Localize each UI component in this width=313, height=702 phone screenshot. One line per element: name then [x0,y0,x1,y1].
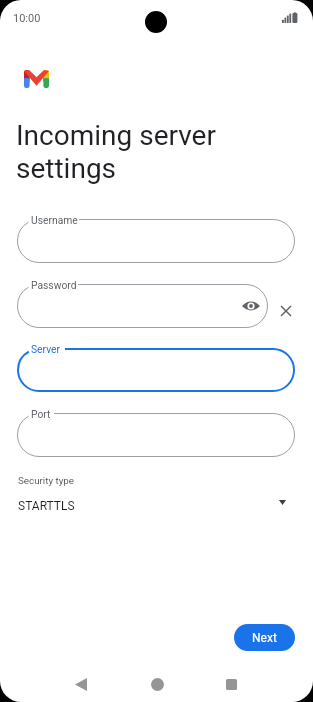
button[interactable]: Clear [274,299,298,323]
staticText: Server [31,343,61,355]
button[interactable]: Recents [211,664,251,702]
staticText: Port [31,408,51,420]
button[interactable]: Password [17,284,268,328]
button[interactable]: Security type [0,472,313,518]
button[interactable]: Port [17,413,295,457]
staticText: 10:00 [13,12,41,25]
button[interactable]: Back [61,664,101,702]
button[interactable]: Server [17,348,295,392]
staticText: Next [252,631,277,645]
staticText: Security type [18,475,75,486]
staticText: STARTTLS [18,499,75,513]
staticText: Incoming server settings [16,119,216,185]
staticText: Password [31,279,77,291]
button[interactable]: Show password [240,295,262,317]
button[interactable]: Next [234,624,295,651]
button[interactable]: Home [137,664,177,702]
button[interactable]: Username [17,219,295,263]
staticText: Username [31,214,78,226]
